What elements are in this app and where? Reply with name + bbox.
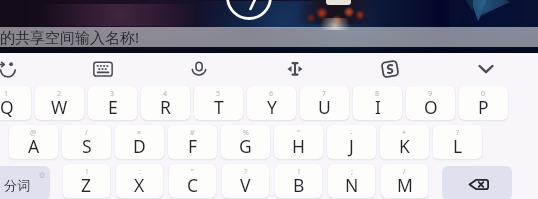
staticText: Q <box>0 95 14 119</box>
staticText: 4 <box>163 89 168 99</box>
staticText: " <box>191 167 194 177</box>
button[interactable]: @ <box>9 125 58 159</box>
staticText: 6 <box>269 89 274 99</box>
staticText: 分词 <box>4 177 31 194</box>
staticText: Y <box>267 95 277 119</box>
button[interactable]: 6 <box>247 86 296 120</box>
staticText: : <box>139 167 141 177</box>
staticText: % <box>243 128 249 138</box>
staticText: 1 <box>4 89 9 99</box>
staticText: ″ <box>297 128 300 138</box>
button[interactable]: Keyboard layout <box>81 54 125 84</box>
button[interactable]: / <box>62 125 111 159</box>
button[interactable]: Move cursor <box>273 54 317 84</box>
button[interactable]: + <box>380 125 429 159</box>
staticText: ? <box>456 128 460 138</box>
staticText: K <box>399 134 410 158</box>
button[interactable]: ! <box>275 164 322 198</box>
button[interactable]: ? <box>222 164 269 198</box>
staticText: T <box>214 95 224 119</box>
staticText: + <box>402 128 407 138</box>
staticText: M <box>397 173 413 197</box>
staticText: N <box>345 173 359 197</box>
button[interactable]: - <box>327 125 376 159</box>
staticText: V <box>240 173 251 197</box>
button[interactable]: 4 <box>141 86 190 120</box>
staticText: ! <box>86 167 88 177</box>
button[interactable]: 0 <box>459 86 508 120</box>
staticText: S <box>82 134 92 158</box>
staticText: R <box>160 95 171 119</box>
staticText: - <box>350 128 353 138</box>
button[interactable]: " <box>169 164 216 198</box>
button[interactable]: ! <box>63 164 110 198</box>
staticText: H <box>292 134 305 158</box>
button[interactable]: 5 <box>194 86 243 120</box>
button[interactable]: 7 <box>300 86 349 120</box>
button[interactable]: 分词 <box>0 166 50 199</box>
button[interactable]: Emoji <box>0 54 30 84</box>
button[interactable]: 1 <box>0 86 31 120</box>
staticText: C <box>187 173 199 197</box>
staticText: ; <box>351 167 353 177</box>
button[interactable]: Voice input <box>177 54 221 84</box>
button[interactable]: Hide keyboard <box>464 54 508 84</box>
staticText: 0 <box>481 89 486 99</box>
staticText: E <box>108 95 118 119</box>
button[interactable]: Backspace <box>442 166 512 199</box>
staticText: G <box>239 134 252 158</box>
button[interactable]: / <box>381 164 428 198</box>
staticText: @ <box>30 128 37 138</box>
staticText: 9 <box>428 89 433 99</box>
button[interactable]: : <box>116 164 163 198</box>
staticText: ? <box>244 167 248 177</box>
button[interactable]: ″ <box>274 125 323 159</box>
staticText: F <box>188 134 198 158</box>
button[interactable]: Sogou settings <box>368 54 412 84</box>
button[interactable]: % <box>221 125 270 159</box>
staticText: P <box>478 95 489 119</box>
staticText: X <box>134 173 145 197</box>
staticText: 2 <box>57 89 62 99</box>
staticText: W <box>51 95 68 119</box>
staticText: D <box>133 134 146 158</box>
button[interactable]: 2 <box>35 86 84 120</box>
button[interactable]: # <box>168 125 217 159</box>
staticText: 的共享空间输入名称! <box>0 27 140 47</box>
staticText: 5 <box>216 89 221 99</box>
staticText: × <box>137 128 142 138</box>
staticText: I <box>375 95 381 119</box>
staticText: 8 <box>375 89 380 99</box>
button[interactable]: ? <box>433 125 482 159</box>
staticText: O <box>424 95 438 119</box>
button[interactable]: × <box>115 125 164 159</box>
staticText: 3 <box>110 89 115 99</box>
staticText: B <box>293 173 305 197</box>
staticText: J <box>349 134 354 158</box>
staticText: / <box>403 167 406 177</box>
button[interactable]: ; <box>328 164 375 198</box>
staticText: A <box>28 134 40 158</box>
staticText: L <box>453 134 463 158</box>
staticText: ! <box>298 167 300 177</box>
staticText: Z <box>81 173 92 197</box>
staticText: # <box>190 128 195 138</box>
staticText: / <box>85 128 88 138</box>
button[interactable]: 8 <box>353 86 402 120</box>
button[interactable]: 9 <box>406 86 455 120</box>
staticText: U <box>318 95 331 119</box>
button[interactable]: 3 <box>88 86 137 120</box>
staticText: 7 <box>322 89 327 99</box>
